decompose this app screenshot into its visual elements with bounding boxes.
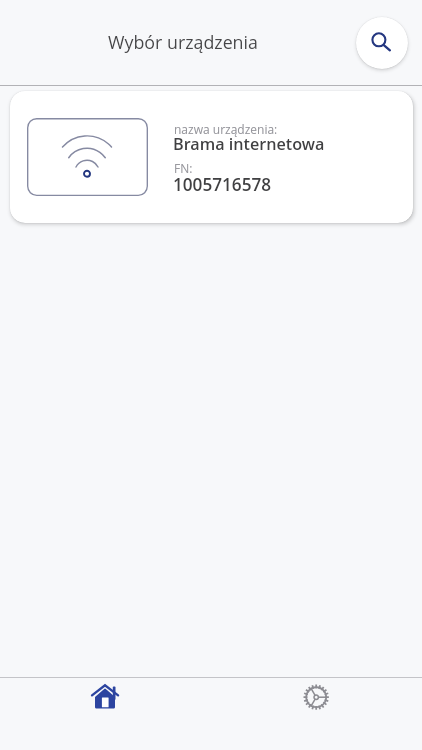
staticText: Wybór urządzenia — [108, 30, 258, 54]
button[interactable]: Search — [356, 17, 408, 69]
button[interactable]: nazwa urządzenia: — [10, 91, 413, 223]
button[interactable]: Settings — [211, 678, 422, 750]
button[interactable]: Home — [0, 678, 211, 750]
staticText: 1005716578 — [173, 173, 272, 196]
staticText: nazwa urządzenia: — [174, 121, 278, 137]
staticText: FN: — [174, 160, 193, 176]
staticText: Brama internetowa — [173, 133, 325, 155]
